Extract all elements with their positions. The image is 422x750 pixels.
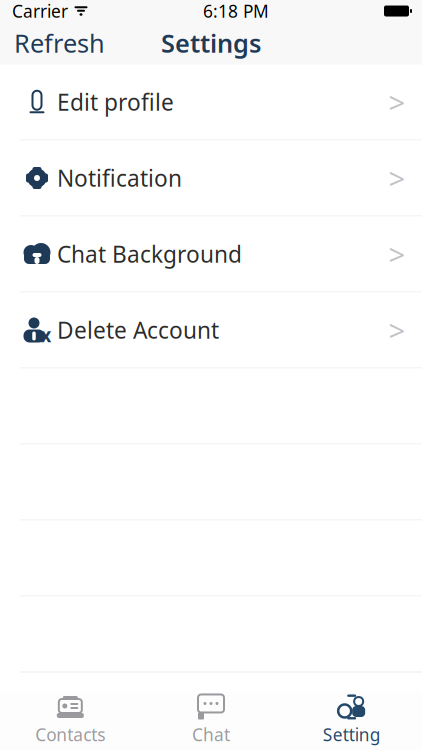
button[interactable]: Notification — [0, 140, 422, 216]
staticText: x — [40, 323, 51, 347]
staticText: Chat Background — [57, 239, 242, 269]
staticText: Contacts — [35, 723, 105, 746]
staticText: Edit profile — [57, 87, 174, 117]
button[interactable]: Contacts — [0, 688, 141, 750]
button[interactable]: Chat — [141, 688, 281, 750]
button[interactable]: Setting — [281, 688, 422, 750]
staticText: Chat — [192, 723, 230, 746]
button[interactable]: x — [0, 292, 422, 368]
staticText: Refresh — [14, 26, 105, 60]
staticText: > — [388, 310, 405, 349]
button[interactable]: Edit profile — [0, 64, 422, 140]
staticText: Notification — [57, 163, 182, 193]
button[interactable]: Chat Background — [0, 216, 422, 292]
staticText: > — [388, 82, 405, 121]
staticText: > — [388, 234, 405, 273]
staticText: Settings — [161, 26, 261, 60]
staticText: Delete Account — [57, 315, 219, 345]
staticText: 6:18 PM — [203, 0, 269, 22]
staticText: Setting — [323, 723, 381, 746]
staticText: Carrier — [12, 0, 68, 22]
staticText: > — [388, 158, 405, 197]
button[interactable]: Refresh — [0, 16, 119, 70]
